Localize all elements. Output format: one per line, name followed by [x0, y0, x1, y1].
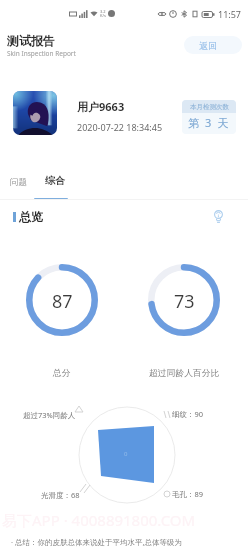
staticText: 87 [52, 289, 73, 314]
staticText: 11:57 [218, 8, 242, 20]
staticText: Skin Inspection Report [7, 49, 76, 58]
staticText: 易下APP · 4008891800.COM [2, 510, 196, 530]
staticText: 返回 [199, 40, 217, 51]
staticText: 2020-07-22 18:34:45 [77, 121, 163, 133]
button[interactable]: 问题 [4, 174, 33, 191]
staticText: 用户9663 [77, 99, 125, 114]
button[interactable]: 综合 [39, 172, 71, 189]
staticText: 0 [124, 450, 128, 458]
staticText: 光滑度：68 [41, 490, 80, 500]
staticText: 测试报告 [7, 33, 55, 48]
staticText: 超过同龄人百分比 [149, 368, 220, 379]
staticText: 综合 [45, 174, 65, 187]
button[interactable]: 本月检测次数 [182, 100, 236, 134]
staticText: 问题 [10, 177, 27, 188]
staticText: 总分 [53, 368, 71, 379]
staticText: 第 3 天 [188, 115, 231, 130]
staticText: · 总结：你的皮肤总体来说处于平均水平,总体等级为 [11, 537, 182, 547]
staticText: 本月检测次数 [190, 103, 229, 111]
staticText: 3.2 K/s [100, 9, 106, 18]
staticText: 超过73%同龄人 [23, 410, 76, 420]
staticText: 细纹：90 [172, 409, 204, 419]
staticText: 总览 [19, 209, 43, 224]
button[interactable]: 返回 [184, 36, 242, 54]
staticText: 毛孔：89 [172, 489, 204, 499]
staticText: 73 [174, 289, 195, 314]
button[interactable]: Help [209, 207, 227, 225]
